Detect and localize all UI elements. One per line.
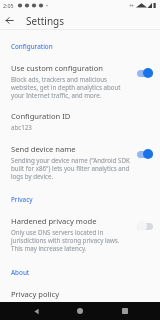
staticText: Block ads, trackers and malicious websit… (11, 75, 132, 99)
button[interactable]: Hardened privacy mode (0, 215, 160, 253)
staticText: Only use DNS servers located in jurisdic… (11, 228, 132, 252)
staticText: Use custom configuration (11, 63, 103, 73)
staticText: Sending your device name ("Android SDK b… (11, 156, 132, 180)
staticText: Configuration (11, 42, 53, 51)
staticText: About (11, 268, 30, 277)
staticText: Privacy policy (11, 289, 59, 299)
staticText: Hardened privacy mode (11, 216, 97, 226)
button[interactable]: Privacy policy (0, 288, 160, 300)
staticText: 2:05 (3, 2, 14, 9)
button[interactable]: Configuration ID (0, 110, 160, 132)
button[interactable]: Use custom configuration (0, 62, 160, 100)
button[interactable]: Back (27, 302, 45, 320)
staticText: Configuration ID (11, 111, 71, 121)
staticText: Send device name (11, 144, 76, 154)
staticText: abc123 (11, 123, 32, 131)
button[interactable]: Recent apps (116, 302, 134, 320)
button[interactable]: Back (0, 11, 19, 30)
button[interactable]: Send device name (0, 143, 160, 181)
button[interactable]: Home (71, 302, 89, 320)
staticText: Privacy (11, 195, 33, 204)
staticText: Settings (26, 14, 65, 28)
